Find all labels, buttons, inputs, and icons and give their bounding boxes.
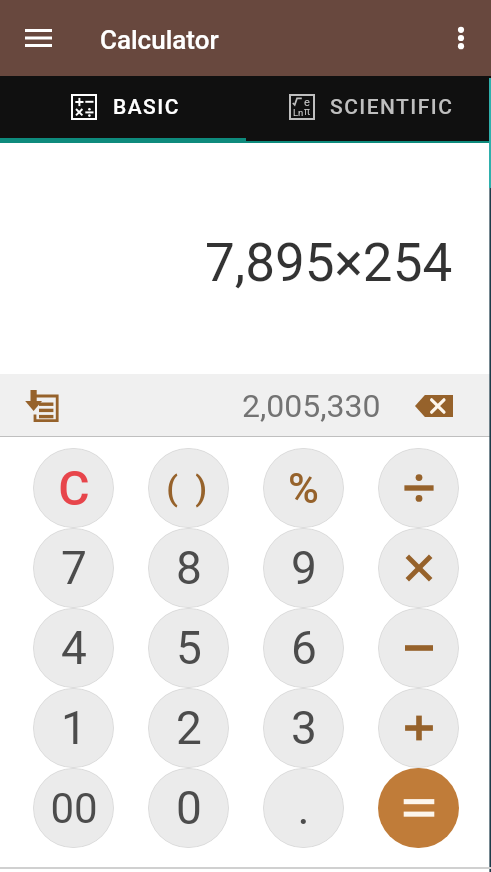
staticText: 1 [61,701,87,755]
staticText: 2,005,330 [242,387,381,425]
button[interactable]: . [263,768,344,848]
staticText: . [297,781,310,835]
button[interactable]: Equals [378,768,459,848]
staticText: 3 [291,701,317,755]
staticText: ( ) [166,468,212,508]
staticText: BASIC [113,95,180,120]
staticText: C [58,460,90,516]
button[interactable]: Backspace [408,374,460,437]
staticText: 5 [176,621,202,675]
staticText: 9 [291,541,317,595]
staticText: 0 [176,781,202,835]
staticText: 4 [61,621,87,675]
button[interactable]: 3 [263,688,344,768]
staticText: Ln [293,107,304,118]
button[interactable]: 1 [33,688,114,768]
button[interactable]: 0 [148,768,229,848]
button[interactable]: Add [378,688,459,768]
staticText: SCIENTIFIC [330,95,454,120]
staticText: % [288,464,319,513]
staticText: Calculator [100,25,219,55]
staticText: 2 [176,701,202,755]
button[interactable]: History [13,374,69,437]
button[interactable]: 2 [148,688,229,768]
staticText: π [304,106,310,118]
staticText: 00 [50,784,98,833]
button[interactable]: More options [437,14,485,62]
button[interactable]: 4 [33,608,114,688]
button[interactable]: Menu [13,13,63,63]
staticText: 7 [61,541,87,595]
button[interactable]: Subtract [378,608,459,688]
button[interactable]: % [263,448,344,528]
staticText: 8 [176,541,202,595]
button[interactable]: C [33,448,114,528]
button[interactable]: 00 [33,768,114,848]
button[interactable]: e [245,76,491,138]
button[interactable]: Divide [378,448,459,528]
staticText: e [304,96,310,109]
button[interactable]: ( ) [148,448,229,528]
button[interactable]: Multiply [378,528,459,608]
staticText: 7,895×254 [205,232,453,294]
button[interactable]: 6 [263,608,344,688]
staticText: 6 [291,621,317,675]
button[interactable]: 8 [148,528,229,608]
button[interactable]: BASIC [0,76,245,138]
button[interactable]: 7 [33,528,114,608]
button[interactable]: 9 [263,528,344,608]
button[interactable]: 5 [148,608,229,688]
